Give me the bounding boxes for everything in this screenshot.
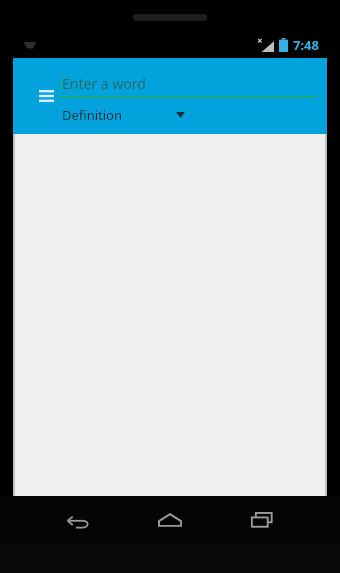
- button[interactable]: Open navigation drawer: [32, 82, 60, 110]
- button[interactable]: Definition: [59, 104, 199, 126]
- staticText: 7:48: [293, 36, 319, 54]
- staticText: Definition: [62, 106, 122, 124]
- button[interactable]: Recent apps: [236, 496, 288, 544]
- button[interactable]: Back: [52, 496, 104, 544]
- button[interactable]: Home: [144, 496, 196, 544]
- staticText: Enter a word: [62, 74, 146, 93]
- button[interactable]: Enter a word: [59, 72, 317, 98]
